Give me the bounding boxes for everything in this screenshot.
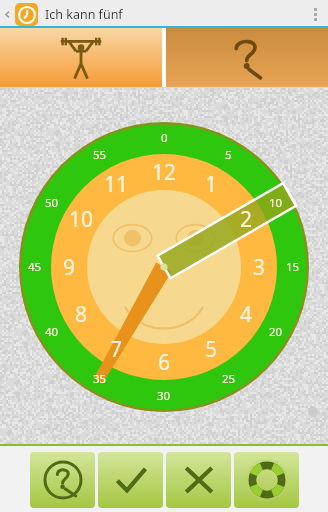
staticText: 50 (45, 195, 59, 211)
button[interactable]: Timer app icon (15, 3, 38, 26)
staticText: 15 (286, 259, 300, 275)
button[interactable]: Help (30, 452, 95, 508)
button[interactable]: Back (0, 0, 15, 28)
staticText: 20 (269, 324, 283, 340)
staticText: 1 (205, 170, 218, 199)
button[interactable]: Lifebuoy (234, 452, 299, 508)
staticText: 3 (253, 253, 266, 282)
staticText: 40 (45, 324, 59, 340)
staticText: Ich kann fünf (45, 6, 123, 23)
staticText: 10 (269, 195, 283, 211)
staticText: 5 (205, 335, 218, 364)
staticText: 12 (152, 158, 177, 187)
button[interactable]: More options (302, 0, 328, 28)
staticText: 35 (93, 371, 107, 387)
staticText: 4 (240, 300, 253, 329)
staticText: 8 (75, 300, 88, 329)
staticText: 6 (158, 348, 171, 377)
staticText: 5 (225, 147, 232, 163)
button[interactable]: Help (166, 28, 328, 87)
button[interactable]: Cancel (166, 452, 231, 508)
staticText: 0 (161, 130, 168, 146)
staticText: 45 (28, 259, 42, 275)
button[interactable]: Exercise (0, 28, 162, 87)
staticText: 25 (222, 371, 236, 387)
staticText: 30 (157, 388, 171, 404)
staticText: 2 (240, 205, 253, 234)
staticText: 11 (104, 170, 129, 199)
staticText: 55 (93, 147, 107, 163)
staticText: 10 (69, 205, 94, 234)
staticText: 9 (63, 253, 76, 282)
staticText: 7 (110, 335, 123, 364)
button[interactable]: Confirm (98, 452, 163, 508)
